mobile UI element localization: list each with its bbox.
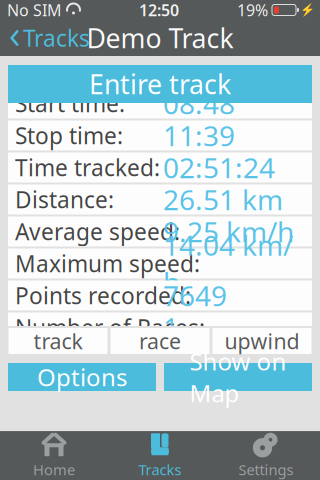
staticText: 9.25 km/h: [163, 213, 294, 250]
staticText: upwind: [224, 327, 299, 355]
staticText: 14.04 km/h: [163, 226, 293, 301]
staticText: Show on Map: [189, 345, 286, 409]
button[interactable]: Show on Map: [164, 363, 312, 391]
staticText: 1: [163, 309, 179, 346]
staticText: Maximum speed:: [15, 248, 200, 278]
staticText: Number of Races:: [15, 312, 205, 342]
staticText: Distance:: [15, 184, 114, 214]
staticText: Settings: [238, 460, 293, 479]
staticText: track: [33, 327, 82, 355]
staticText: Tracks: [23, 23, 90, 53]
staticText: race: [139, 327, 181, 355]
staticText: Points recorded:: [15, 280, 191, 310]
staticText: 26.51 km: [163, 181, 283, 218]
staticText: Average speed:: [15, 216, 180, 246]
staticText: 19%: [237, 0, 268, 21]
staticText: 11:39: [163, 117, 235, 154]
staticText: Options: [37, 361, 127, 393]
staticText: Stop time:: [15, 120, 123, 150]
staticText: Tracks: [138, 460, 181, 479]
button[interactable]: Home: [1, 431, 107, 480]
staticText: ⚡: [300, 3, 315, 17]
staticText: 7649: [163, 277, 227, 314]
staticText: Start time:: [15, 88, 125, 118]
staticText: Home: [33, 460, 75, 479]
button[interactable]: track: [8, 328, 107, 354]
staticText: Demo Track: [86, 20, 233, 56]
button[interactable]: Options: [8, 363, 156, 391]
button[interactable]: Tracks: [0, 20, 98, 56]
button[interactable]: Settings: [213, 431, 319, 480]
staticText: No SIM: [7, 0, 62, 21]
staticText: 02:51:24: [163, 149, 275, 186]
button[interactable]: Entire track: [8, 65, 312, 103]
staticText: Time tracked:: [15, 152, 160, 182]
staticText: 12:50: [139, 0, 179, 21]
staticText: 08:48: [163, 85, 235, 122]
button[interactable]: upwind: [212, 328, 311, 354]
staticText: Entire track: [89, 66, 231, 102]
button[interactable]: race: [110, 328, 209, 354]
button[interactable]: Tracks: [107, 431, 213, 480]
